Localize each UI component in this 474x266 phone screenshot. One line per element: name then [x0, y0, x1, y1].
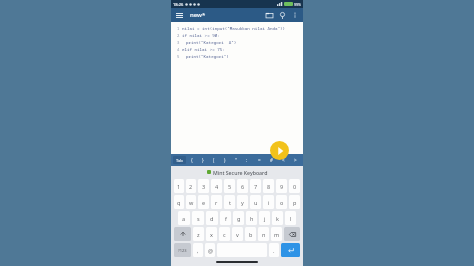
button[interactable]: 2 [171, 32, 303, 39]
button[interactable]: d [206, 211, 218, 225]
staticText: < [282, 157, 285, 163]
button[interactable]: x [206, 227, 217, 241]
staticText: if nilai >= 90: [182, 33, 220, 39]
staticText: y [241, 199, 244, 206]
button[interactable]: q [174, 195, 184, 209]
button[interactable]: Enter [281, 243, 300, 257]
button[interactable]: = [253, 154, 265, 166]
staticText: b [249, 231, 253, 238]
button[interactable]: Run [270, 141, 289, 160]
button[interactable]: r [211, 195, 222, 209]
button[interactable]: j [259, 211, 270, 225]
button[interactable]: w [186, 195, 196, 209]
button[interactable]: 5 [224, 179, 235, 193]
button[interactable]: k [272, 211, 283, 225]
button[interactable]: Search [277, 10, 288, 21]
button[interactable]: < [277, 154, 289, 166]
staticText: 3 [202, 183, 206, 190]
staticText: , [197, 247, 199, 254]
staticText: v [236, 231, 239, 238]
button[interactable]: 1 [174, 179, 184, 193]
staticText: 2 [177, 33, 180, 38]
button[interactable]: m [271, 227, 282, 241]
staticText: ) [224, 157, 226, 163]
staticText: elif nilai >= 75: [182, 47, 225, 53]
staticText: k [276, 215, 279, 222]
button[interactable]: 1 [171, 25, 303, 32]
staticText: g [237, 215, 241, 222]
button[interactable]: . [269, 243, 279, 257]
button[interactable]: More options [290, 10, 300, 20]
button[interactable]: @ [205, 243, 215, 257]
button[interactable]: h [246, 211, 257, 225]
button[interactable]: Open file [264, 10, 275, 21]
button[interactable]: : [241, 154, 253, 166]
button[interactable]: Key [174, 227, 191, 241]
button[interactable]: 4 [171, 46, 303, 53]
button[interactable]: t [224, 195, 235, 209]
button[interactable]: 3 [171, 39, 303, 46]
button[interactable]: s [192, 211, 204, 225]
staticText: x [210, 231, 213, 238]
staticText: 3 [177, 40, 180, 45]
button[interactable]: Menu [174, 10, 184, 20]
staticText: p [293, 199, 297, 206]
button[interactable]: 5 [171, 53, 303, 60]
button[interactable]: } [197, 154, 208, 166]
button[interactable]: { [186, 154, 197, 166]
button[interactable]: , [193, 243, 203, 257]
button[interactable]: e [198, 195, 209, 209]
button[interactable]: u [250, 195, 261, 209]
staticText: . [273, 247, 275, 254]
button[interactable]: v [232, 227, 243, 241]
button[interactable]: y [237, 195, 248, 209]
staticText: 6 [241, 183, 245, 190]
staticText: a [182, 215, 186, 222]
staticText: e [202, 199, 206, 206]
button[interactable]: n [258, 227, 269, 241]
staticText: new* [190, 11, 206, 19]
button[interactable]: l [285, 211, 296, 225]
button[interactable]: Tab [173, 156, 186, 164]
staticText: nilai = int(input("Masukkan nilai Anda")… [182, 26, 286, 32]
staticText: ( [213, 157, 215, 163]
button[interactable]: z [193, 227, 204, 241]
staticText: u [254, 199, 258, 206]
button[interactable]: > [289, 154, 301, 166]
button[interactable]: i [263, 195, 274, 209]
button[interactable]: 8 [263, 179, 274, 193]
staticText: ?123 [178, 248, 187, 253]
button[interactable]: p [289, 195, 300, 209]
staticText: # [270, 157, 273, 163]
button[interactable]: a [178, 211, 190, 225]
button[interactable]: 4 [211, 179, 222, 193]
staticText: } [202, 157, 204, 163]
button[interactable]: ( [208, 154, 219, 166]
button[interactable]: 3 [198, 179, 209, 193]
button[interactable]: f [220, 211, 231, 225]
button[interactable]: o [276, 195, 287, 209]
button[interactable]: Key [174, 243, 191, 257]
staticText: z [197, 231, 200, 238]
staticText: Tab [176, 158, 183, 163]
button[interactable]: " [230, 154, 241, 166]
button[interactable]: 7 [250, 179, 261, 193]
staticText: q [177, 199, 181, 206]
staticText: c [223, 231, 226, 238]
button[interactable]: b [245, 227, 256, 241]
button[interactable]: 6 [237, 179, 248, 193]
staticText: h [250, 215, 254, 222]
button[interactable]: 2 [186, 179, 196, 193]
button[interactable]: g [233, 211, 244, 225]
button[interactable]: Key [284, 227, 300, 241]
button[interactable]: # [265, 154, 277, 166]
staticText: w [189, 199, 194, 206]
button[interactable]: ) [219, 154, 230, 166]
staticText: j [264, 215, 266, 222]
button[interactable]: c [219, 227, 230, 241]
staticText: print("Kategori") [186, 54, 229, 60]
staticText: 4 [215, 183, 219, 190]
button[interactable]: 9 [276, 179, 287, 193]
button[interactable]: 0 [289, 179, 300, 193]
